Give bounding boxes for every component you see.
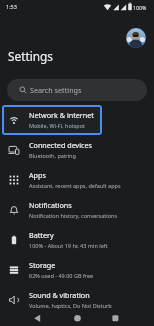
staticText: Notification history, conversations <box>29 212 118 219</box>
button[interactable] <box>126 28 146 48</box>
staticText: 62% used - 49.00 GB free <box>29 272 94 279</box>
staticText: 100% <box>133 4 147 11</box>
button[interactable]: Network & internet <box>0 105 154 135</box>
staticText: 100% - About 19 hr, 43 min left <box>29 242 108 249</box>
staticText: Battery <box>29 230 54 240</box>
staticText: Apps <box>29 170 46 180</box>
staticText: Search settings <box>30 85 82 95</box>
staticText: Settings <box>8 48 53 64</box>
button[interactable]: Search settings <box>7 79 147 101</box>
staticText: Sound & vibration <box>29 290 90 300</box>
staticText: 1:53 <box>6 3 17 10</box>
staticText: Network & internet <box>29 110 94 120</box>
button[interactable]: Notifications <box>0 195 154 225</box>
button[interactable]: Sound & vibration <box>0 285 154 315</box>
staticText: Volume, haptics, Do Not Disturb <box>29 302 112 309</box>
staticText: Notifications <box>29 200 72 210</box>
button[interactable]: Apps <box>0 165 154 195</box>
staticText: Assistant, recent apps, default apps <box>29 182 121 189</box>
button[interactable]: Battery <box>0 225 154 255</box>
staticText: Connected devices <box>29 140 92 150</box>
staticText: Bluetooth, pairing <box>29 152 76 159</box>
button[interactable]: Connected devices <box>0 135 154 165</box>
staticText: Storage <box>29 260 56 270</box>
staticText: Mobile, Wi-Fi, hotspot <box>29 122 86 129</box>
button[interactable]: Storage <box>0 255 154 285</box>
